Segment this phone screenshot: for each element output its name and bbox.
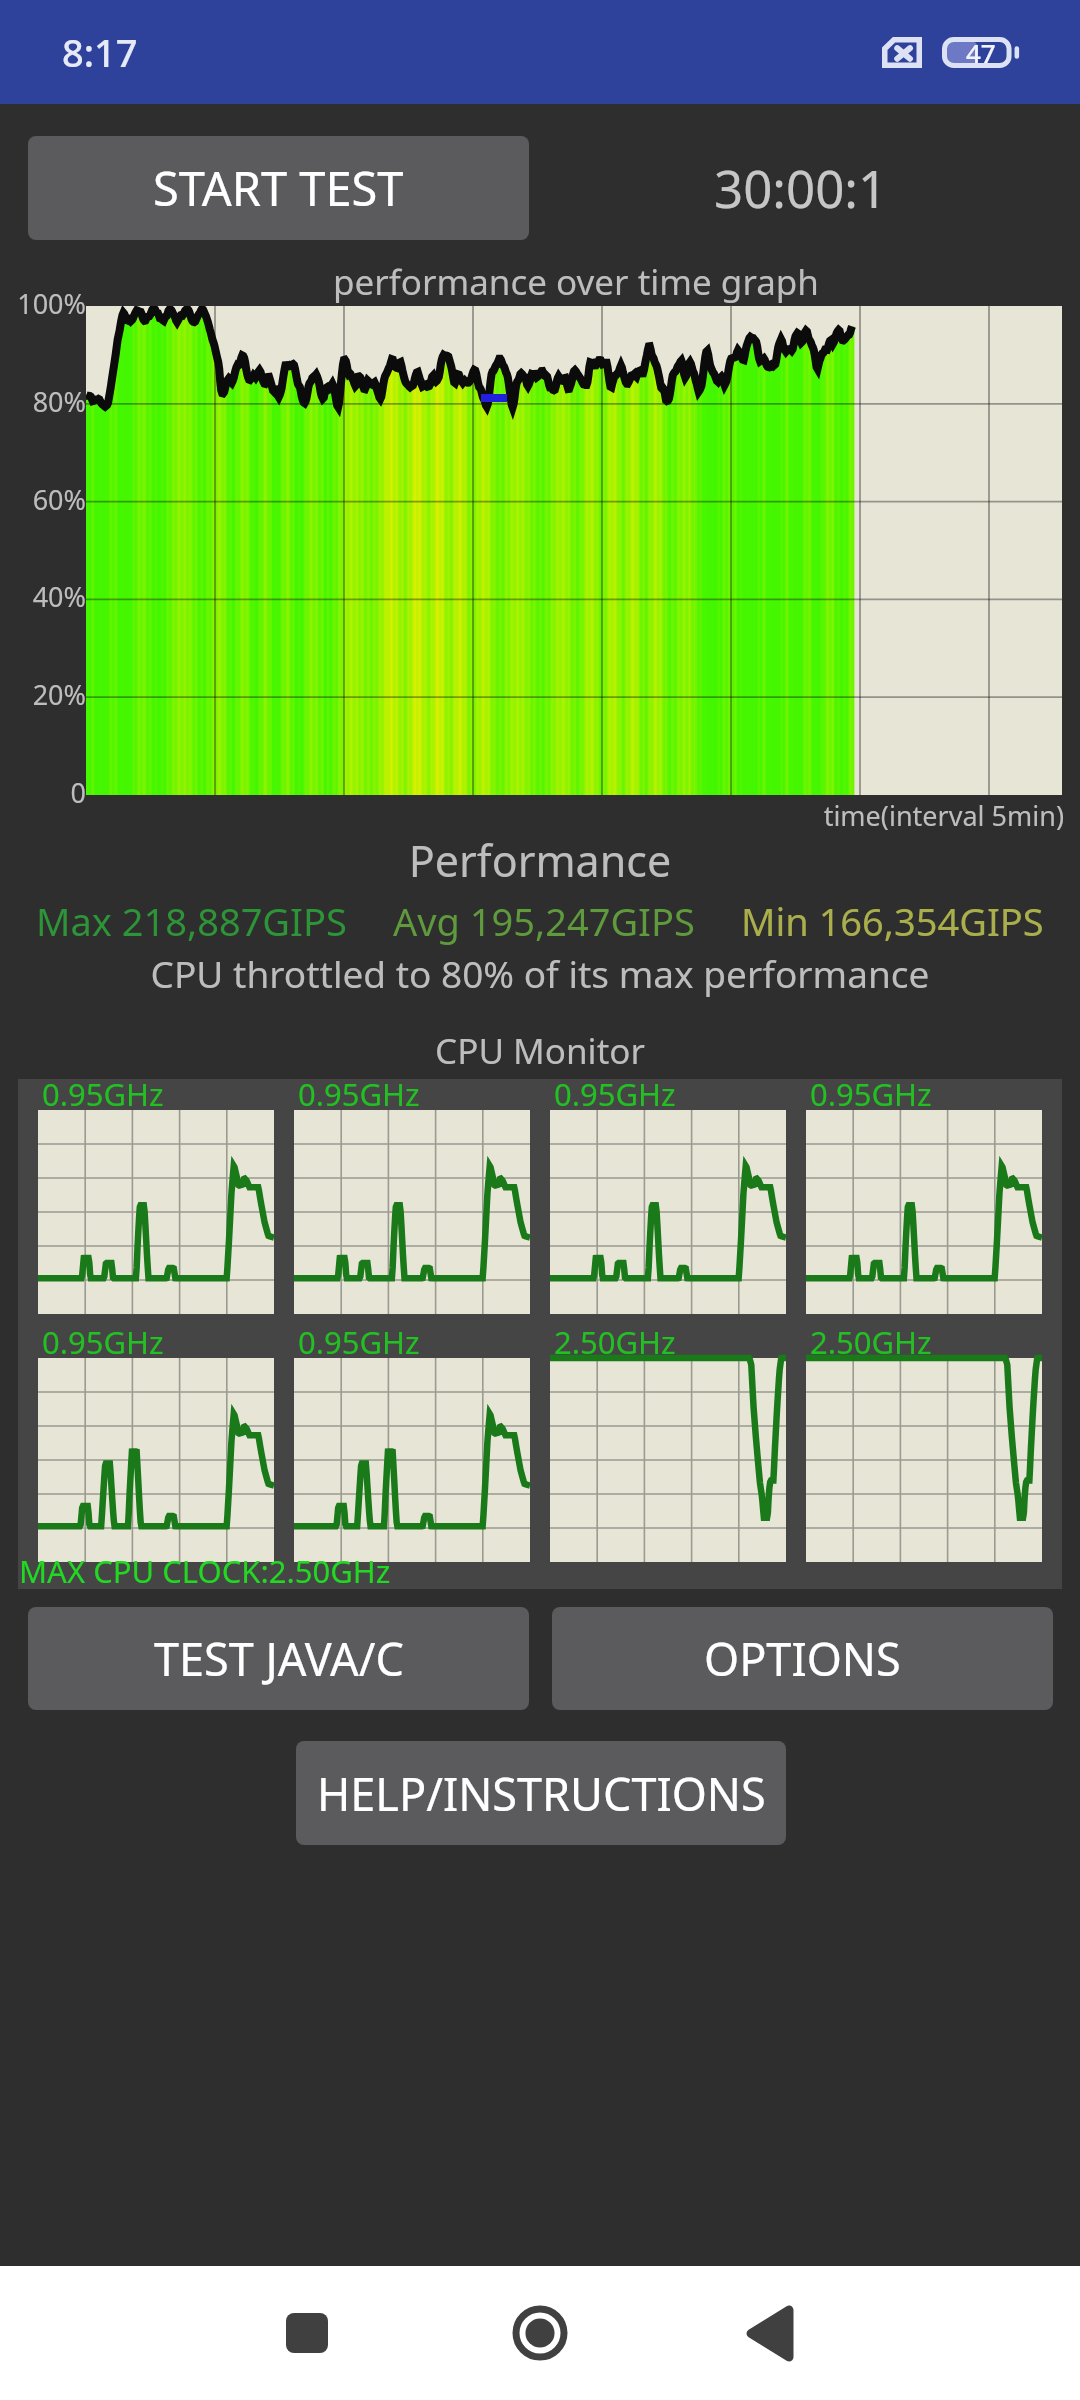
- staticText: 40%: [2, 578, 86, 615]
- button[interactable]: START TEST: [28, 136, 529, 240]
- staticText: OPTIONS: [704, 1628, 901, 1689]
- button[interactable]: TEST JAVA/C: [28, 1607, 529, 1710]
- button[interactable]: Back: [704, 2266, 836, 2400]
- staticText: 47: [966, 35, 996, 70]
- button[interactable]: Recent apps: [241, 2266, 373, 2400]
- staticText: Max 218,887GIPS: [36, 895, 347, 947]
- staticText: CPU throttled to 80% of its max performa…: [0, 948, 1080, 998]
- staticText: 0.95GHz: [810, 1073, 932, 1115]
- staticText: CPU Monitor: [0, 1027, 1080, 1075]
- staticText: 2.50GHz: [810, 1321, 932, 1363]
- staticText: 20%: [2, 676, 86, 713]
- staticText: 30:00:1: [714, 153, 888, 222]
- staticText: time(interval 5min): [0, 797, 1064, 834]
- staticText: 0.95GHz: [42, 1073, 164, 1115]
- staticText: 0.95GHz: [298, 1073, 420, 1115]
- staticText: 0.95GHz: [42, 1321, 164, 1363]
- button[interactable]: OPTIONS: [552, 1607, 1053, 1710]
- staticText: 2.50GHz: [554, 1321, 676, 1363]
- staticText: 0: [2, 774, 86, 811]
- staticText: Performance: [0, 831, 1080, 890]
- staticText: Avg 195,247GIPS: [393, 895, 695, 947]
- staticText: TEST JAVA/C: [154, 1628, 404, 1689]
- staticText: performance over time graph: [36, 258, 1080, 306]
- staticText: 8:17: [62, 26, 138, 78]
- staticText: START TEST: [153, 156, 404, 220]
- staticText: HELP/INSTRUCTIONS: [317, 1763, 766, 1824]
- staticText: MAX CPU CLOCK:2.50GHz: [19, 1550, 391, 1592]
- staticText: Min 166,354GIPS: [741, 895, 1044, 947]
- staticText: 0.95GHz: [298, 1321, 420, 1363]
- staticText: 100%: [2, 285, 86, 322]
- staticText: 80%: [2, 383, 86, 420]
- staticText: 0.95GHz: [554, 1073, 676, 1115]
- button[interactable]: Home: [474, 2266, 606, 2400]
- button[interactable]: HELP/INSTRUCTIONS: [296, 1741, 786, 1845]
- staticText: 60%: [2, 481, 86, 518]
